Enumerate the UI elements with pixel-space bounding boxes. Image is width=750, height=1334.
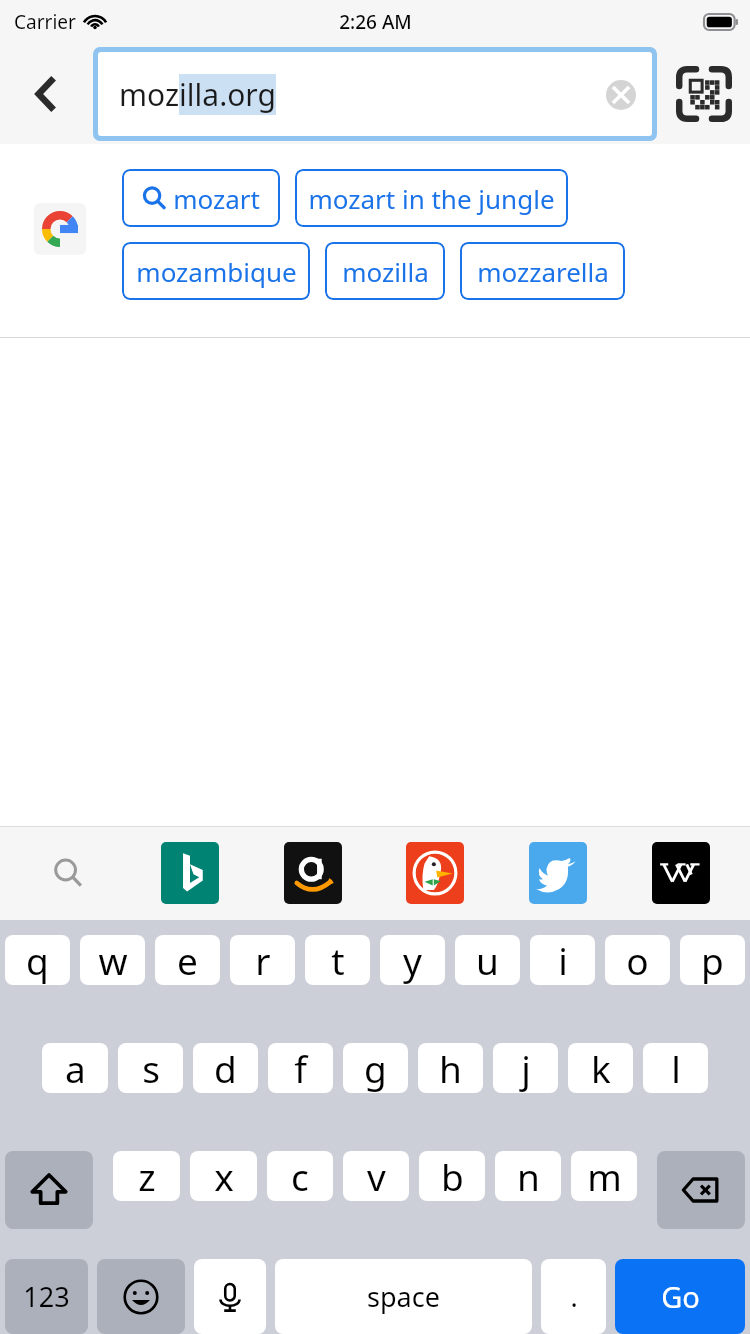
staticText: mozart in the jungle	[308, 181, 555, 216]
staticText: a	[65, 1043, 86, 1093]
button[interactable]: c	[267, 1151, 333, 1201]
staticText: g	[364, 1043, 387, 1093]
staticText: x	[214, 1151, 234, 1201]
button[interactable]: d	[193, 1043, 258, 1093]
button[interactable]: p	[680, 935, 745, 985]
button[interactable]: v	[343, 1151, 409, 1201]
staticText: o	[626, 935, 649, 985]
staticText: h	[439, 1043, 462, 1093]
button[interactable]: Amazon	[284, 842, 342, 904]
button[interactable]: y	[380, 935, 445, 985]
button[interactable]: u	[455, 935, 520, 985]
button[interactable]: space	[275, 1259, 532, 1334]
staticText: i	[558, 935, 568, 985]
staticText: l	[671, 1043, 681, 1093]
button[interactable]: h	[418, 1043, 483, 1093]
button[interactable]: w	[80, 935, 145, 985]
button[interactable]: Backspace	[657, 1151, 745, 1229]
button[interactable]: g	[343, 1043, 408, 1093]
staticText: e	[177, 935, 198, 985]
button[interactable]: l	[643, 1043, 708, 1093]
button[interactable]: q	[5, 935, 70, 985]
button[interactable]: n	[495, 1151, 561, 1201]
staticText: q	[26, 935, 49, 985]
staticText: j	[521, 1043, 531, 1093]
staticText: illa.org	[179, 74, 276, 115]
staticText: z	[138, 1151, 156, 1201]
button[interactable]: f	[268, 1043, 333, 1093]
staticText: r	[255, 935, 271, 985]
button[interactable]: Search	[40, 845, 96, 901]
button[interactable]: Shift	[5, 1151, 93, 1229]
staticText: mozart	[173, 181, 260, 216]
button[interactable]: j	[493, 1043, 558, 1093]
staticText: m	[587, 1151, 622, 1201]
staticText: Go	[661, 1277, 700, 1316]
staticText: y	[403, 935, 422, 985]
button[interactable]: Wikipedia	[652, 842, 710, 904]
button[interactable]: mozilla	[325, 242, 445, 300]
staticText: p	[701, 935, 724, 985]
button[interactable]: DuckDuckGo	[406, 842, 464, 904]
button[interactable]: k	[568, 1043, 633, 1093]
staticText: v	[367, 1151, 386, 1201]
staticText: space	[367, 1278, 440, 1315]
staticText: 2:26 AM	[339, 9, 412, 35]
button[interactable]: b	[419, 1151, 485, 1201]
staticText: .	[570, 1278, 578, 1315]
staticText: b	[441, 1151, 464, 1201]
button[interactable]: Bing	[161, 842, 219, 904]
staticText: mozzarella	[477, 254, 609, 289]
button[interactable]: m	[571, 1151, 637, 1201]
staticText: u	[476, 935, 499, 985]
button[interactable]: Go	[615, 1259, 745, 1334]
button[interactable]: .	[541, 1259, 606, 1334]
button[interactable]: x	[190, 1151, 257, 1201]
staticText: mozambique	[136, 254, 297, 289]
button[interactable]: Scan QR code	[657, 44, 750, 144]
staticText: d	[214, 1043, 237, 1093]
button[interactable]: 123	[5, 1259, 88, 1334]
button[interactable]: a	[42, 1043, 108, 1093]
button[interactable]: Dictate	[194, 1259, 266, 1334]
staticText: Carrier	[14, 9, 76, 35]
staticText: t	[331, 935, 345, 985]
button[interactable]: mozambique	[122, 242, 310, 300]
button[interactable]: Twitter	[529, 842, 587, 904]
button[interactable]: r	[230, 935, 295, 985]
button[interactable]: i	[530, 935, 595, 985]
staticText: k	[591, 1043, 611, 1093]
button[interactable]: Emoji	[97, 1259, 185, 1334]
button[interactable]: mozart in the jungle	[295, 169, 568, 227]
button[interactable]: moz	[98, 52, 652, 136]
staticText: f	[294, 1043, 307, 1093]
button[interactable]: mozzarella	[460, 242, 625, 300]
button[interactable]: Back	[0, 44, 93, 144]
button[interactable]: s	[118, 1043, 183, 1093]
button[interactable]: e	[155, 935, 220, 985]
staticText: mozilla	[342, 254, 429, 289]
button[interactable]: o	[605, 935, 670, 985]
button[interactable]: t	[305, 935, 370, 985]
staticText: n	[517, 1151, 540, 1201]
staticText: s	[142, 1043, 160, 1093]
staticText: w	[98, 935, 128, 985]
staticText: 123	[23, 1278, 70, 1315]
button[interactable]: mozart	[122, 169, 280, 227]
button[interactable]: z	[113, 1151, 180, 1201]
staticText: c	[291, 1151, 309, 1201]
staticText: moz	[119, 74, 179, 115]
button[interactable]: Clear	[604, 78, 638, 112]
